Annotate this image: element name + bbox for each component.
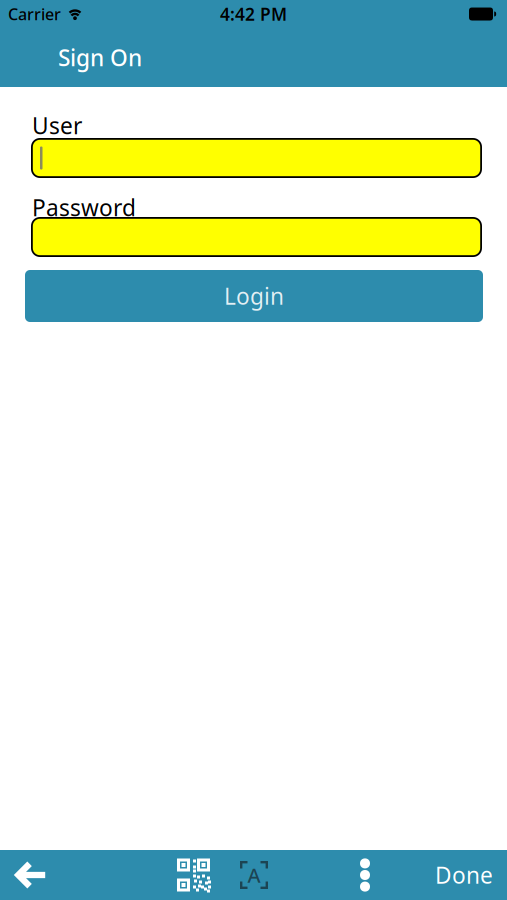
button[interactable]: Done	[435, 860, 507, 890]
button[interactable]: More options	[360, 858, 370, 892]
staticText: User	[32, 110, 82, 141]
staticText: Done	[435, 860, 493, 890]
button[interactable]: Scan text	[240, 861, 268, 889]
button[interactable]: Scan QR code	[177, 858, 210, 891]
button[interactable]: Login	[25, 270, 483, 322]
staticText: Carrier	[8, 3, 61, 25]
staticText: A	[247, 862, 260, 888]
staticText: Login	[224, 281, 284, 311]
staticText: Password	[32, 192, 136, 223]
staticText: 4:42 PM	[220, 2, 287, 25]
staticText: Sign On	[58, 42, 142, 72]
button[interactable]: Back	[0, 861, 45, 888]
